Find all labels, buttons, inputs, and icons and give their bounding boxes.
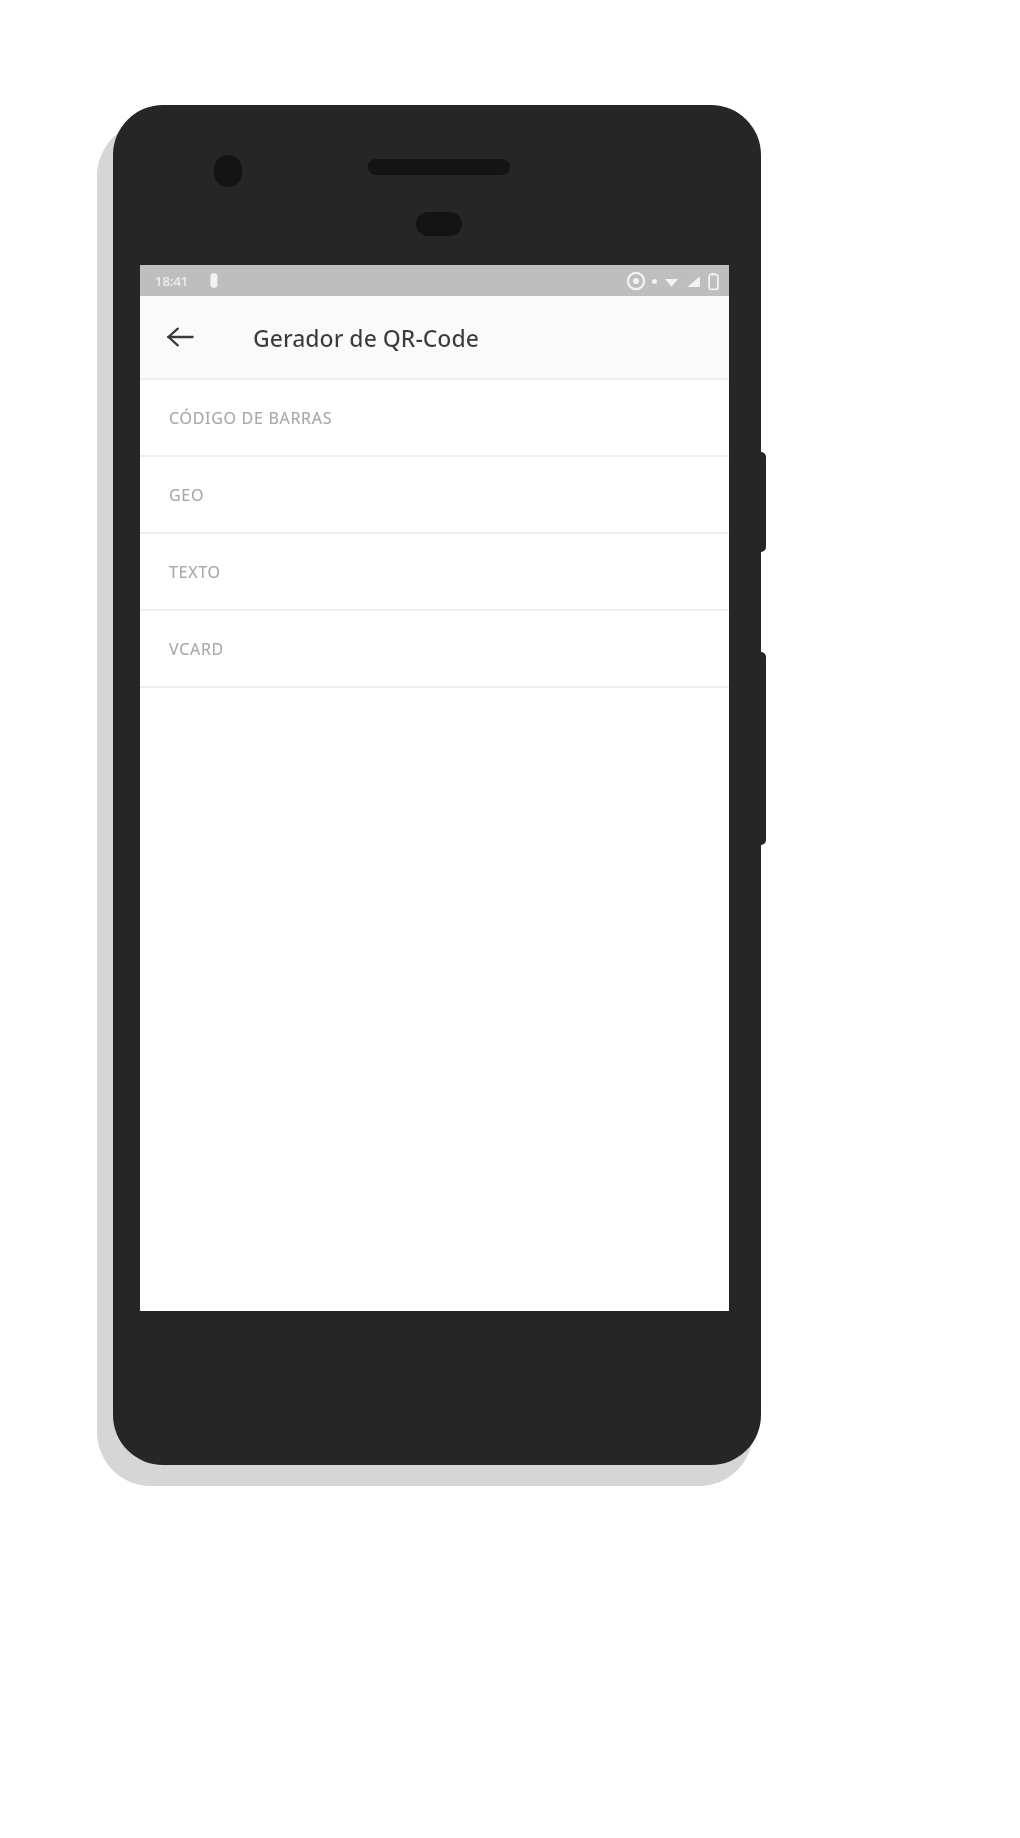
staticText: GEO [169, 484, 205, 506]
staticText: CÓDIGO DE BARRAS [169, 407, 333, 429]
button[interactable]: Back [153, 310, 207, 364]
button[interactable]: GEO [140, 457, 729, 532]
staticText: TEXTO [169, 561, 221, 583]
staticText: VCARD [169, 638, 224, 660]
button[interactable]: TEXTO [140, 534, 729, 609]
staticText: 18:41 [155, 272, 189, 290]
button[interactable]: VCARD [140, 611, 729, 686]
button[interactable]: CÓDIGO DE BARRAS [140, 380, 729, 455]
staticText: Gerador de QR-Code [253, 322, 479, 353]
